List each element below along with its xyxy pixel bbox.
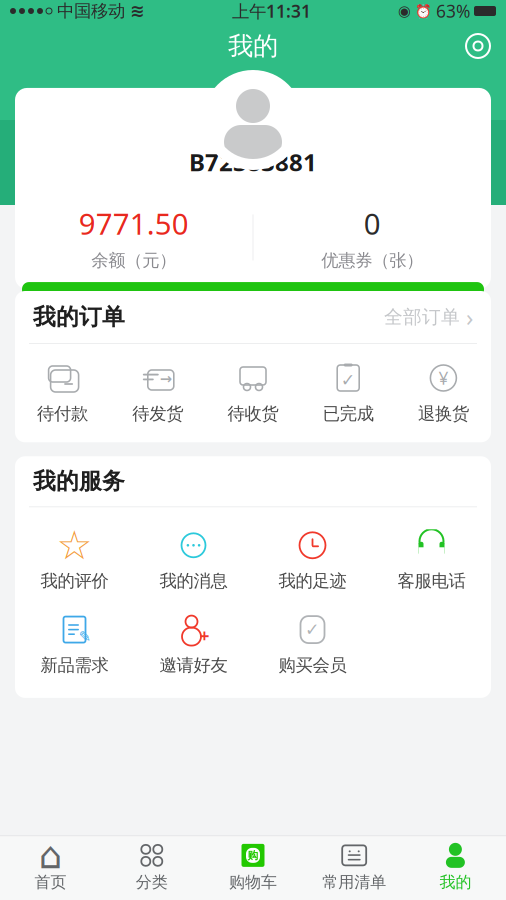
staticText: 购买会员 [278, 655, 346, 676]
staticText: 上午11:31 [232, 0, 311, 22]
button[interactable]: ☆ [15, 525, 134, 596]
button[interactable]: + [134, 610, 253, 680]
staticText: 9771.50 [79, 204, 189, 243]
button[interactable]: ✓ [301, 358, 396, 428]
staticText: 我的 [439, 872, 471, 892]
staticText: 退换货 [418, 403, 469, 424]
staticText: 余额（元） [91, 250, 176, 271]
button[interactable]: 9771.50 [15, 204, 252, 271]
button[interactable]: 待收货 [205, 358, 301, 428]
button[interactable]: 常用清单 [304, 836, 405, 900]
button[interactable]: 分类 [101, 836, 202, 900]
staticText: ✓ [341, 370, 356, 390]
button[interactable]: 我的 [405, 836, 506, 900]
staticText: ☆ [56, 523, 92, 568]
staticText: 新品需求 [40, 655, 108, 676]
staticText: › [466, 301, 473, 333]
staticText: → [160, 371, 172, 387]
staticText: 待收货 [227, 403, 278, 424]
button[interactable]: ✎ [15, 610, 134, 680]
staticText: ◉ [398, 3, 411, 19]
staticText: 待发货 [132, 403, 183, 424]
staticText: 全部订单 [384, 305, 460, 328]
staticText: B72383881 [189, 146, 317, 178]
button[interactable]: → [110, 358, 205, 428]
staticText: 0 [364, 204, 381, 243]
staticText: 邀请好友 [159, 655, 227, 676]
button[interactable]: 客服电话 [372, 525, 491, 596]
staticText: 我的足迹 [278, 570, 346, 592]
button[interactable]: ⌂ [0, 836, 101, 900]
button[interactable]: 购 [202, 836, 304, 900]
staticText: 购 [247, 849, 258, 862]
button[interactable]: ✓ [253, 610, 372, 680]
staticText: 63% [436, 0, 470, 22]
staticText: 我的服务 [33, 467, 125, 495]
staticText: 优惠券（张） [321, 250, 423, 271]
staticText: ≋ [130, 1, 145, 21]
button[interactable]: 全部订单 [384, 301, 473, 333]
staticText: ⌂ [39, 834, 63, 877]
staticText: ¥ [438, 366, 448, 389]
button[interactable]: 待付款 [15, 358, 110, 428]
staticText: 常用清单 [322, 872, 386, 892]
staticText: 分类 [136, 872, 168, 892]
button[interactable]: Settings [464, 32, 506, 60]
staticText: 我的 [228, 30, 278, 61]
staticText: 已完成 [323, 403, 374, 424]
staticText: 我的消息 [159, 570, 227, 592]
button[interactable]: 我的消息 [134, 525, 253, 596]
staticText: 待付款 [37, 403, 88, 424]
staticText: 我的订单 [33, 303, 125, 331]
staticText: 我的评价 [40, 570, 108, 592]
staticText: 客服电话 [397, 570, 465, 592]
staticText: + [199, 624, 209, 647]
staticText: 首页 [35, 872, 67, 892]
button[interactable]: 0 [253, 204, 491, 271]
staticText: 购物车 [229, 872, 277, 892]
staticText: ⏰ [415, 3, 432, 19]
staticText: 中国移动 [57, 0, 125, 22]
staticText: ✓ [305, 620, 320, 639]
staticText: ✎ [78, 628, 90, 645]
button[interactable]: 我的足迹 [253, 525, 372, 596]
button[interactable]: ¥ [396, 358, 491, 428]
